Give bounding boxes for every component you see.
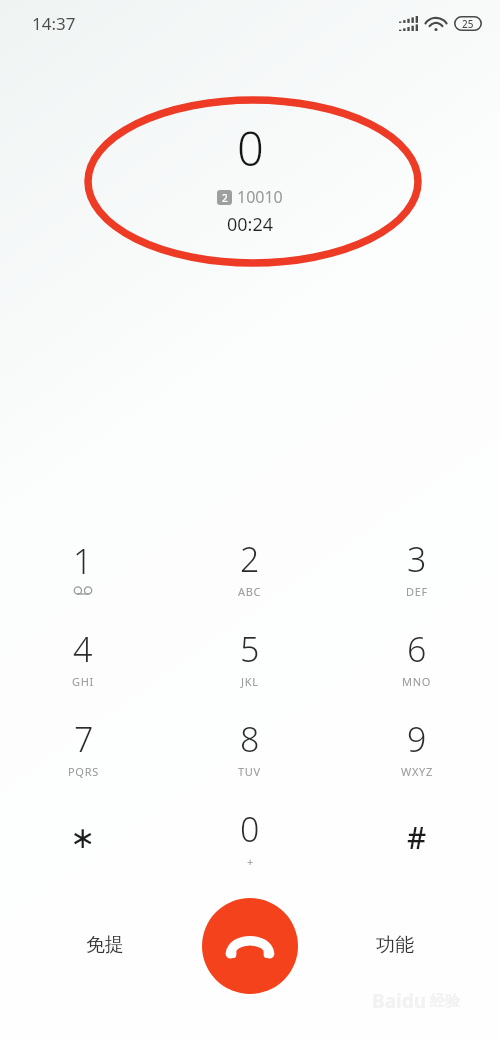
staticText: Baidu <box>372 988 427 1014</box>
staticText: 免提 <box>86 933 124 957</box>
staticText: TUV <box>238 764 261 779</box>
staticText: ∗ <box>70 820 96 855</box>
staticText: 2 <box>240 536 260 582</box>
staticText: ABC <box>238 584 262 599</box>
staticText: 6 <box>407 626 427 672</box>
button[interactable]: 6 <box>333 612 500 702</box>
staticText: GHI <box>72 674 94 689</box>
button[interactable]: 0 <box>166 792 333 882</box>
staticText: 经验 <box>430 992 460 1011</box>
staticText: PQRS <box>68 764 99 779</box>
staticText: 7 <box>74 716 94 762</box>
staticText: 5 <box>240 626 260 672</box>
staticText: 0 <box>240 806 260 852</box>
staticText: 10010 <box>237 186 283 208</box>
staticText: WXYZ <box>401 764 433 779</box>
button[interactable]: 8 <box>166 702 333 792</box>
staticText: 00:24 <box>227 212 274 237</box>
staticText: 0 <box>237 116 264 180</box>
staticText: JKL <box>241 674 259 689</box>
button[interactable]: 5 <box>166 612 333 702</box>
button[interactable]: 3 <box>333 522 500 612</box>
staticText: DEF <box>406 584 428 599</box>
staticText: 2 <box>222 191 228 205</box>
button[interactable]: ∗ <box>0 792 166 882</box>
button[interactable]: 功能 <box>345 912 445 978</box>
staticText: 25 <box>462 17 474 31</box>
staticText: 1 <box>73 538 93 584</box>
button[interactable]: 9 <box>333 702 500 792</box>
button[interactable]: # <box>333 792 500 882</box>
staticText: 功能 <box>376 933 414 957</box>
button[interactable]: End call <box>202 898 298 994</box>
button[interactable]: 1 <box>0 522 166 612</box>
staticText: 3 <box>407 536 427 582</box>
staticText: + <box>247 854 254 869</box>
staticText: 9 <box>407 716 427 762</box>
button[interactable]: 2 <box>166 522 333 612</box>
button[interactable]: 免提 <box>55 912 155 978</box>
button[interactable]: 4 <box>0 612 166 702</box>
staticText: 4 <box>73 626 93 672</box>
staticText: 14:37 <box>32 12 76 35</box>
staticText: 8 <box>240 716 260 762</box>
staticText: MNO <box>402 674 432 689</box>
staticText: # <box>407 817 427 858</box>
button[interactable]: 7 <box>0 702 166 792</box>
